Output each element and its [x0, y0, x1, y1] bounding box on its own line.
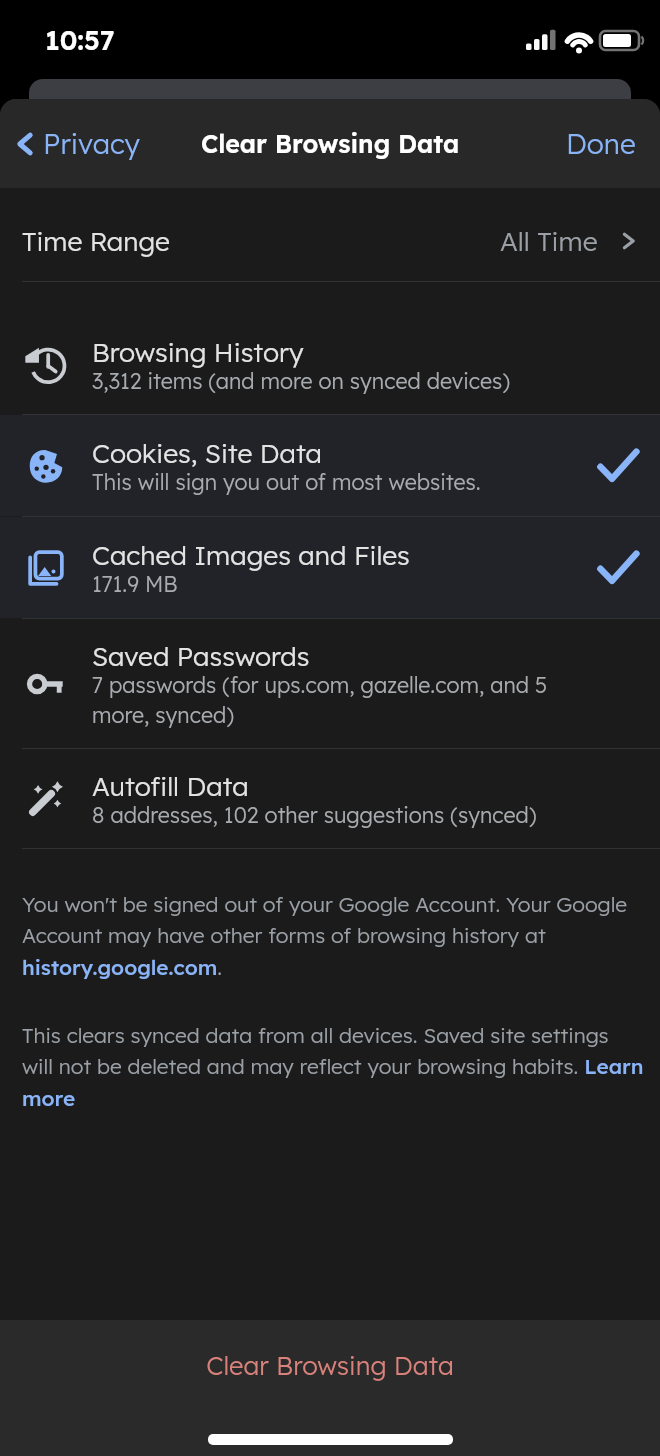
staticText: Cookies, Site Data [92, 436, 323, 469]
staticText: 3,312 items (and more on synced devices) [92, 368, 511, 395]
staticText: Clear Browsing Data [201, 128, 460, 159]
staticText: Browsing History [92, 335, 304, 368]
staticText: Time Range [22, 224, 170, 257]
other: Selected [598, 548, 638, 588]
staticText: 8 addresses, 102 other suggestions (sync… [92, 802, 537, 829]
staticText: Autofill Data [92, 769, 249, 802]
staticText: Done [566, 126, 636, 161]
staticText: This will sign you out of most websites. [92, 469, 481, 496]
button[interactable]: Time Range [0, 188, 660, 281]
other: Selected [598, 446, 638, 486]
staticText: 10:57 [45, 23, 115, 57]
staticText: Privacy [43, 126, 140, 161]
staticText: All Time [500, 224, 598, 257]
button[interactable]: Cached Images and Files [0, 517, 660, 618]
staticText: 171.9 MB [92, 571, 178, 598]
button[interactable]: Browsing History [0, 315, 660, 414]
button[interactable]: Cookies, Site Data [0, 415, 660, 516]
staticText: This clears synced data from all devices… [22, 1022, 644, 1111]
staticText: 7 passwords (for ups.com, gazelle.com, a… [92, 672, 568, 728]
staticText: Cached Images and Files [92, 538, 410, 571]
button[interactable]: Clear Browsing Data [0, 1320, 660, 1456]
button[interactable]: Done [540, 104, 660, 183]
button[interactable]: Privacy [0, 108, 154, 179]
staticText: Saved Passwords [92, 639, 310, 672]
staticText: You won't be signed out of your Google A… [22, 891, 644, 980]
staticText: Clear Browsing Data [206, 1349, 454, 1381]
button[interactable]: Saved Passwords [0, 619, 660, 748]
button[interactable]: Autofill Data [0, 749, 660, 848]
